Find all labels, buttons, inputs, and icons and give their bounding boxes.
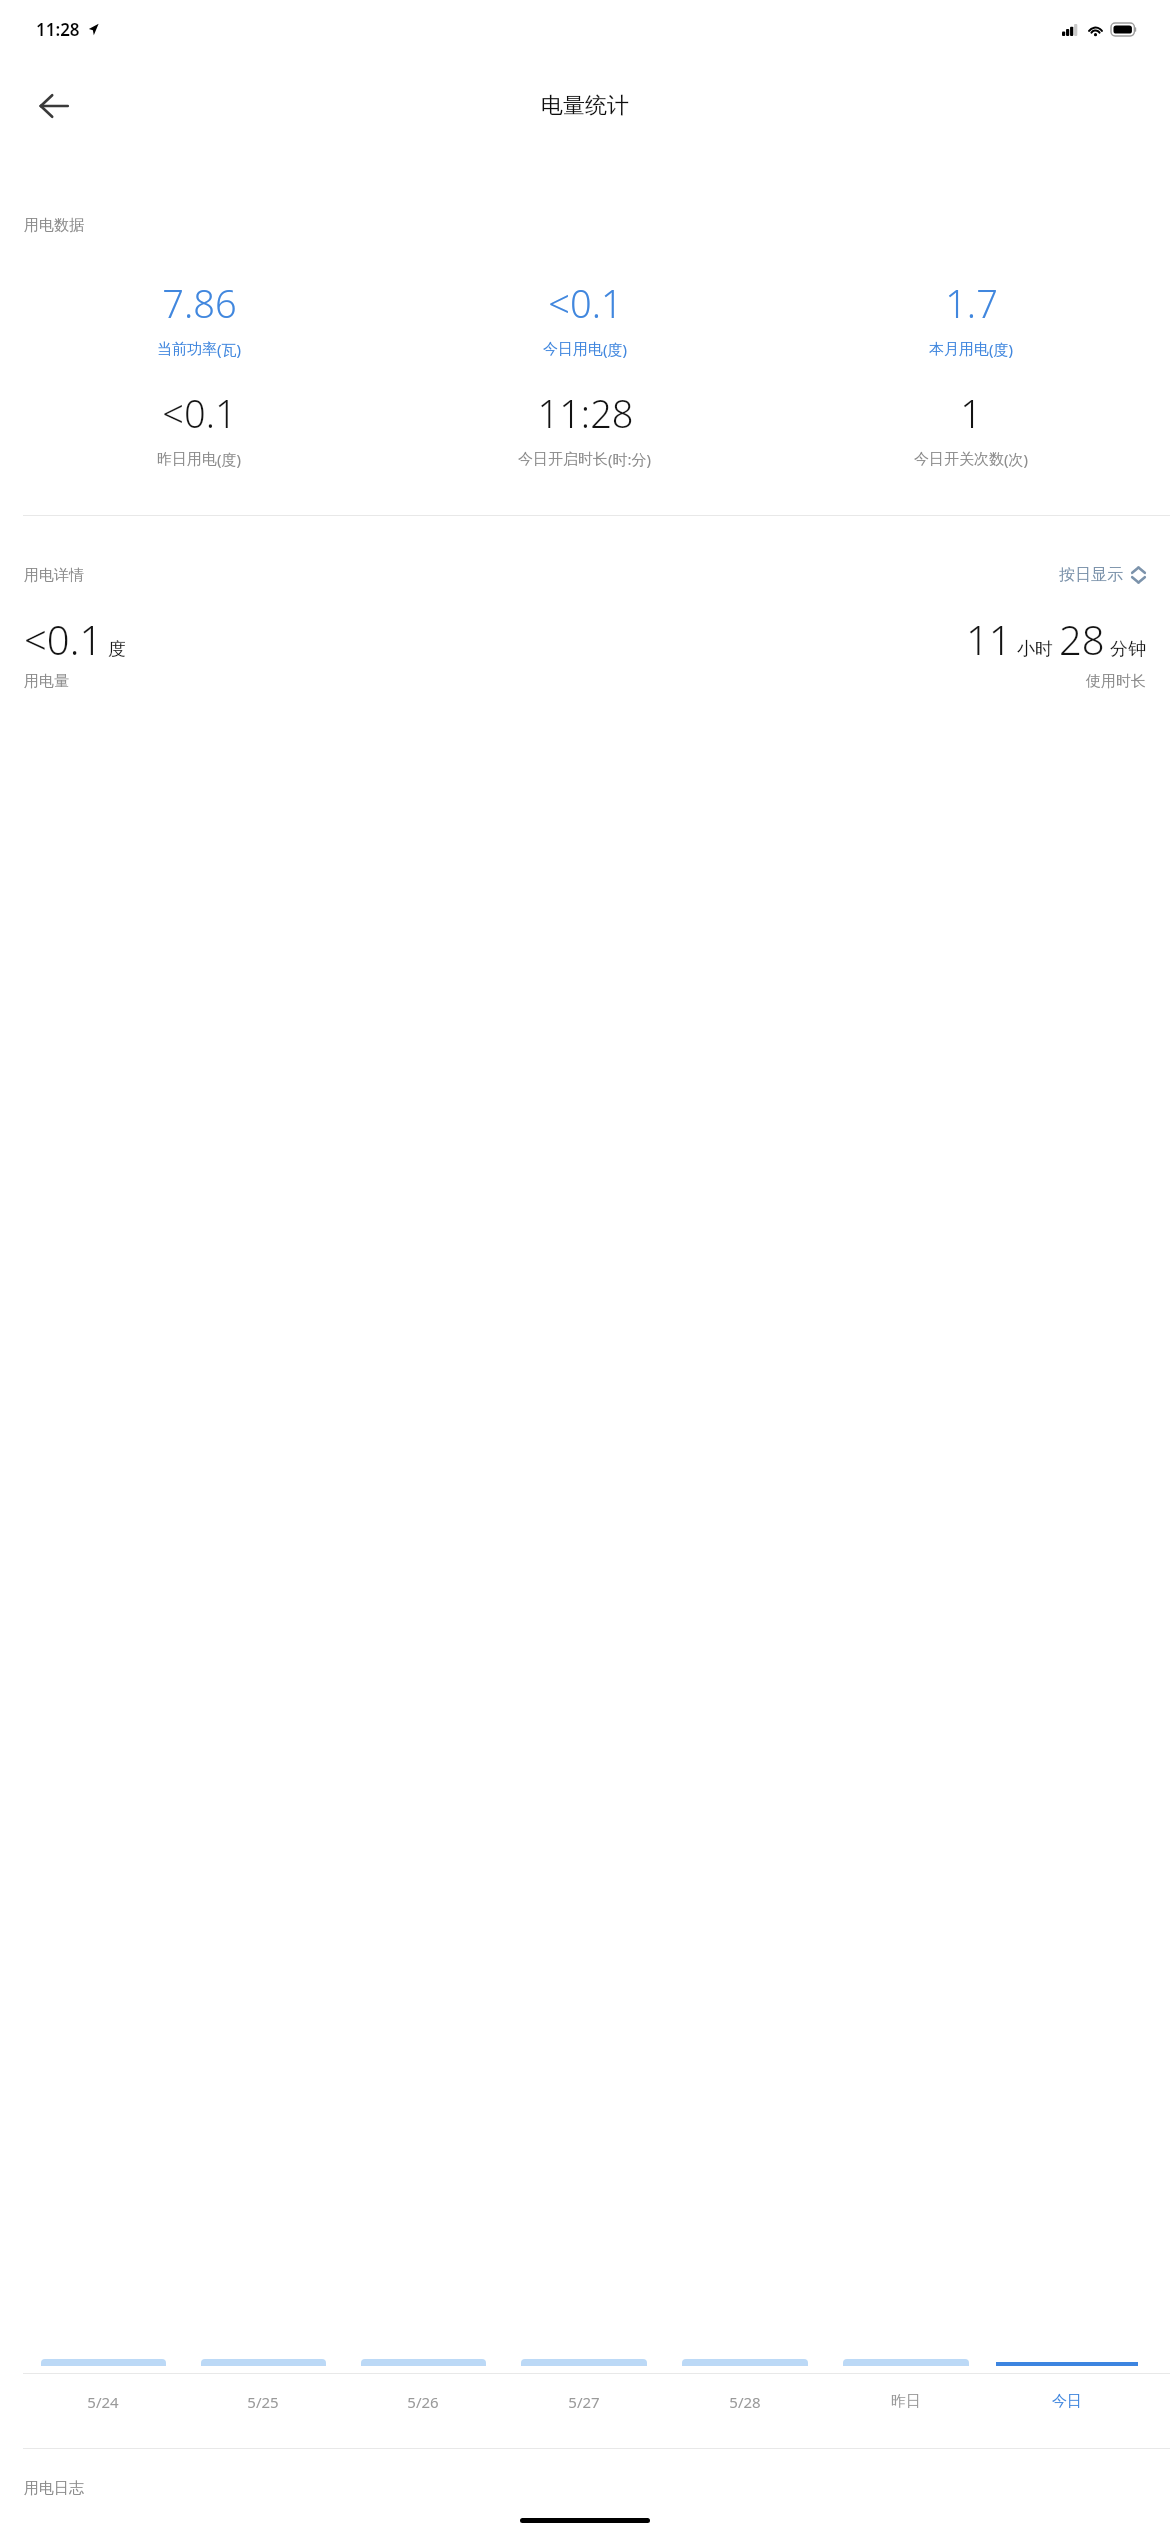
staticText: (次) — [1004, 449, 1029, 469]
button[interactable]: 昨日 — [825, 2392, 986, 2411]
staticText: (度) — [603, 339, 628, 359]
staticText: 1.7 — [945, 277, 998, 329]
button[interactable]: 今日 — [986, 2392, 1147, 2411]
staticText: 用电数据 — [24, 216, 84, 235]
staticText: 11 — [966, 612, 1012, 666]
staticText: 按日显示 — [1059, 565, 1123, 585]
staticText: 5/25 — [247, 2392, 279, 2412]
staticText: 28 — [1059, 612, 1105, 666]
button[interactable]: <0.1 — [24, 612, 126, 691]
button[interactable]: 5/27 — [503, 2392, 664, 2412]
button[interactable]: 5/28 — [664, 2392, 825, 2412]
staticText: 5/24 — [87, 2392, 119, 2412]
button[interactable]: 7.86 — [6, 277, 392, 359]
button[interactable]: 返回 — [26, 78, 82, 134]
button[interactable]: <0.1 — [392, 277, 778, 359]
staticText: 今日用电 — [543, 340, 603, 359]
button[interactable]: 5/25 — [183, 2392, 343, 2412]
staticText: 5/28 — [729, 2392, 761, 2412]
staticText: 分钟 — [1110, 638, 1146, 661]
staticText: 7.86 — [162, 277, 237, 329]
staticText: 用电详情 — [24, 566, 84, 585]
staticText: 小时 — [1017, 638, 1053, 661]
staticText: 度 — [108, 638, 126, 661]
staticText: 使用时长 — [1086, 672, 1146, 691]
staticText: <0.1 — [162, 387, 237, 439]
button[interactable]: 1 — [778, 387, 1164, 469]
staticText: 1 — [960, 387, 982, 439]
staticText: <0.1 — [548, 277, 623, 329]
staticText: 昨日用电 — [157, 450, 217, 469]
button[interactable]: 5/24 — [23, 2392, 183, 2412]
staticText: 昨日 — [891, 2392, 921, 2411]
button[interactable]: <0.1 — [6, 387, 392, 469]
button[interactable]: 1.7 — [778, 277, 1164, 359]
staticText: 今日开关次数 — [914, 450, 1004, 469]
staticText: (度) — [989, 339, 1014, 359]
staticText: 11:28 — [36, 18, 80, 41]
button[interactable]: 5/26 — [343, 2392, 503, 2412]
staticText: 用电量 — [24, 672, 69, 691]
staticText: <0.1 — [24, 612, 103, 666]
staticText: 今日开启时长 — [518, 450, 608, 469]
button[interactable]: 11 — [966, 612, 1146, 691]
staticText: 电量统计 — [541, 92, 629, 120]
staticText: (度) — [217, 449, 242, 469]
staticText: (瓦) — [217, 339, 242, 359]
staticText: 11:28 — [537, 387, 634, 439]
staticText: (时:分) — [608, 449, 652, 469]
staticText: 今日 — [1052, 2392, 1082, 2411]
staticText: 本月用电 — [929, 340, 989, 359]
button[interactable]: 按日显示 — [1059, 564, 1146, 586]
staticText: 用电日志 — [24, 2479, 84, 2498]
staticText: 5/27 — [568, 2392, 600, 2412]
staticText: 当前功率 — [157, 340, 217, 359]
button[interactable]: 11:28 — [392, 387, 778, 469]
staticText: 5/26 — [407, 2392, 439, 2412]
